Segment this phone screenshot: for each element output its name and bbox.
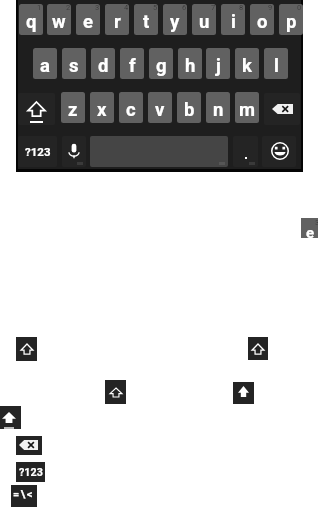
button[interactable]: z — [61, 92, 85, 123]
button[interactable]: o — [250, 4, 274, 35]
button[interactable]: h — [178, 48, 202, 79]
staticText: m — [239, 99, 256, 121]
staticText: e — [83, 11, 93, 33]
button[interactable]: Shift — [0, 406, 21, 429]
staticText: y — [170, 11, 180, 33]
button[interactable]: y — [163, 4, 187, 35]
button[interactable]: k — [235, 48, 259, 79]
button[interactable]: n — [206, 92, 230, 123]
staticText: p — [286, 11, 297, 33]
staticText: 0 — [297, 3, 302, 12]
button[interactable]: Backspace — [16, 436, 42, 455]
button[interactable]: e — [76, 4, 100, 35]
button[interactable]: d — [91, 48, 115, 79]
button[interactable]: b — [177, 92, 201, 123]
staticText: ?123 — [19, 466, 43, 479]
staticText: k — [242, 55, 252, 77]
button[interactable]: Backspace — [264, 93, 300, 125]
button[interactable]: m — [235, 92, 259, 123]
button[interactable]: v — [148, 92, 172, 123]
staticText: i — [231, 11, 236, 33]
button[interactable]: Shift — [248, 337, 268, 360]
button[interactable]: u — [192, 4, 216, 35]
staticText: 5 — [153, 3, 158, 12]
button[interactable]: g — [149, 48, 173, 79]
staticText: j — [216, 55, 221, 77]
staticText: x — [97, 99, 107, 121]
staticText: f — [129, 55, 136, 77]
staticText: s — [69, 55, 79, 77]
button[interactable]: Shift — [233, 382, 254, 404]
staticText: d — [98, 55, 109, 77]
staticText: a — [40, 55, 50, 77]
button[interactable]: s — [62, 48, 86, 79]
button[interactable]: Emoji — [262, 136, 296, 167]
staticText: b — [184, 99, 195, 121]
staticText: z — [68, 99, 78, 121]
staticText: u — [199, 11, 210, 33]
button[interactable]: Shift — [16, 337, 37, 361]
button[interactable]: j — [206, 48, 230, 79]
button[interactable]: More symbols — [11, 485, 37, 507]
staticText: h — [185, 55, 196, 77]
staticText: 4 — [124, 3, 129, 12]
staticText: e — [306, 224, 315, 242]
button[interactable]: e — [301, 218, 318, 238]
button[interactable]: a — [33, 48, 57, 79]
staticText: g — [156, 55, 167, 77]
button[interactable]: Voice input — [62, 136, 86, 167]
button[interactable]: f — [120, 48, 144, 79]
staticText: v — [155, 99, 165, 121]
staticText: t — [143, 11, 150, 33]
staticText: 2 — [66, 3, 71, 12]
staticText: o — [257, 11, 268, 33]
button[interactable]: Symbols — [16, 462, 45, 482]
button[interactable]: Symbols — [18, 136, 57, 167]
button[interactable]: l — [264, 48, 288, 79]
staticText: 6 — [182, 3, 187, 12]
staticText: 3 — [95, 3, 100, 12]
button[interactable]: x — [90, 92, 114, 123]
button[interactable]: t — [134, 4, 158, 35]
staticText: n — [213, 99, 224, 121]
staticText: 3 — [315, 218, 318, 227]
button[interactable]: w — [47, 4, 71, 35]
staticText: c — [126, 99, 136, 121]
staticText: w — [52, 11, 66, 33]
button[interactable]: q — [19, 4, 43, 35]
staticText: 7 — [211, 3, 216, 12]
staticText: ?123 — [25, 145, 51, 158]
button[interactable]: Period — [233, 136, 258, 167]
staticText: l — [274, 55, 279, 77]
staticText: r — [114, 11, 121, 33]
staticText: =\< — [13, 488, 35, 501]
staticText: 1 — [37, 3, 42, 12]
button[interactable]: c — [119, 92, 143, 123]
button[interactable]: r — [105, 4, 129, 35]
staticText: 9 — [268, 3, 273, 12]
button[interactable]: Shift — [105, 380, 126, 404]
button[interactable]: p — [279, 4, 303, 35]
staticText: 8 — [239, 3, 244, 12]
button[interactable]: i — [221, 4, 245, 35]
button[interactable]: Shift — [18, 93, 55, 125]
staticText: q — [26, 11, 37, 33]
